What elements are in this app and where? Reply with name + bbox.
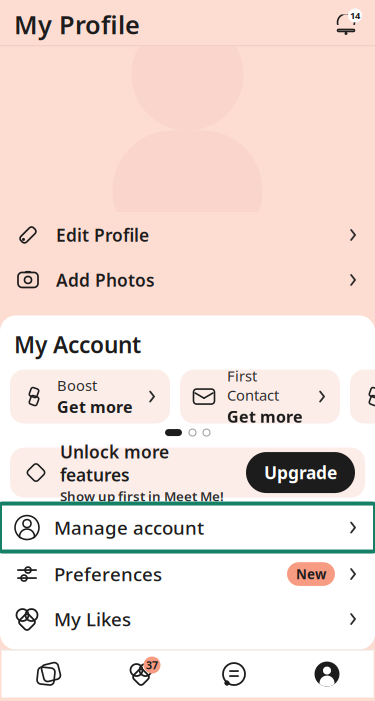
staticText: My Account [14, 329, 141, 359]
staticText: Manage account [54, 515, 204, 540]
staticText: Boost [57, 376, 97, 395]
staticText: Unlock more features [60, 440, 169, 486]
staticText: New [296, 565, 326, 583]
staticText: 37 [146, 658, 158, 672]
staticText: Add Photos [56, 268, 155, 291]
staticText: Get more [227, 406, 303, 427]
button[interactable]: Likes, 37 new [94, 652, 187, 697]
button[interactable]: Boost [10, 370, 170, 424]
button[interactable]: Notifications [329, 7, 363, 41]
staticText: Preferences [54, 562, 162, 586]
button[interactable]: First Contact [180, 370, 340, 424]
staticText: Edit Profile [56, 223, 149, 246]
button[interactable]: Manage account [0, 504, 375, 552]
button[interactable]: My Likes [0, 597, 375, 642]
button[interactable]: Edit Profile [0, 212, 375, 257]
button[interactable]: Profile [280, 652, 373, 697]
button[interactable]: Discover [1, 652, 94, 697]
button[interactable]: Spotlight [350, 370, 375, 424]
staticText: 14 [350, 9, 360, 22]
staticText: First Contact [227, 366, 279, 405]
button[interactable]: Messages [187, 652, 280, 697]
staticText: My Likes [54, 607, 131, 631]
button[interactable]: Add Photos [0, 257, 375, 302]
button[interactable]: Unlock more features [0, 448, 375, 498]
staticText: Get more [57, 396, 133, 417]
staticText: My Profile [14, 8, 140, 41]
staticText: Upgrade [264, 461, 337, 484]
button[interactable]: Preferences [0, 552, 375, 597]
staticText: Show up first in Meet Me! [60, 487, 224, 505]
